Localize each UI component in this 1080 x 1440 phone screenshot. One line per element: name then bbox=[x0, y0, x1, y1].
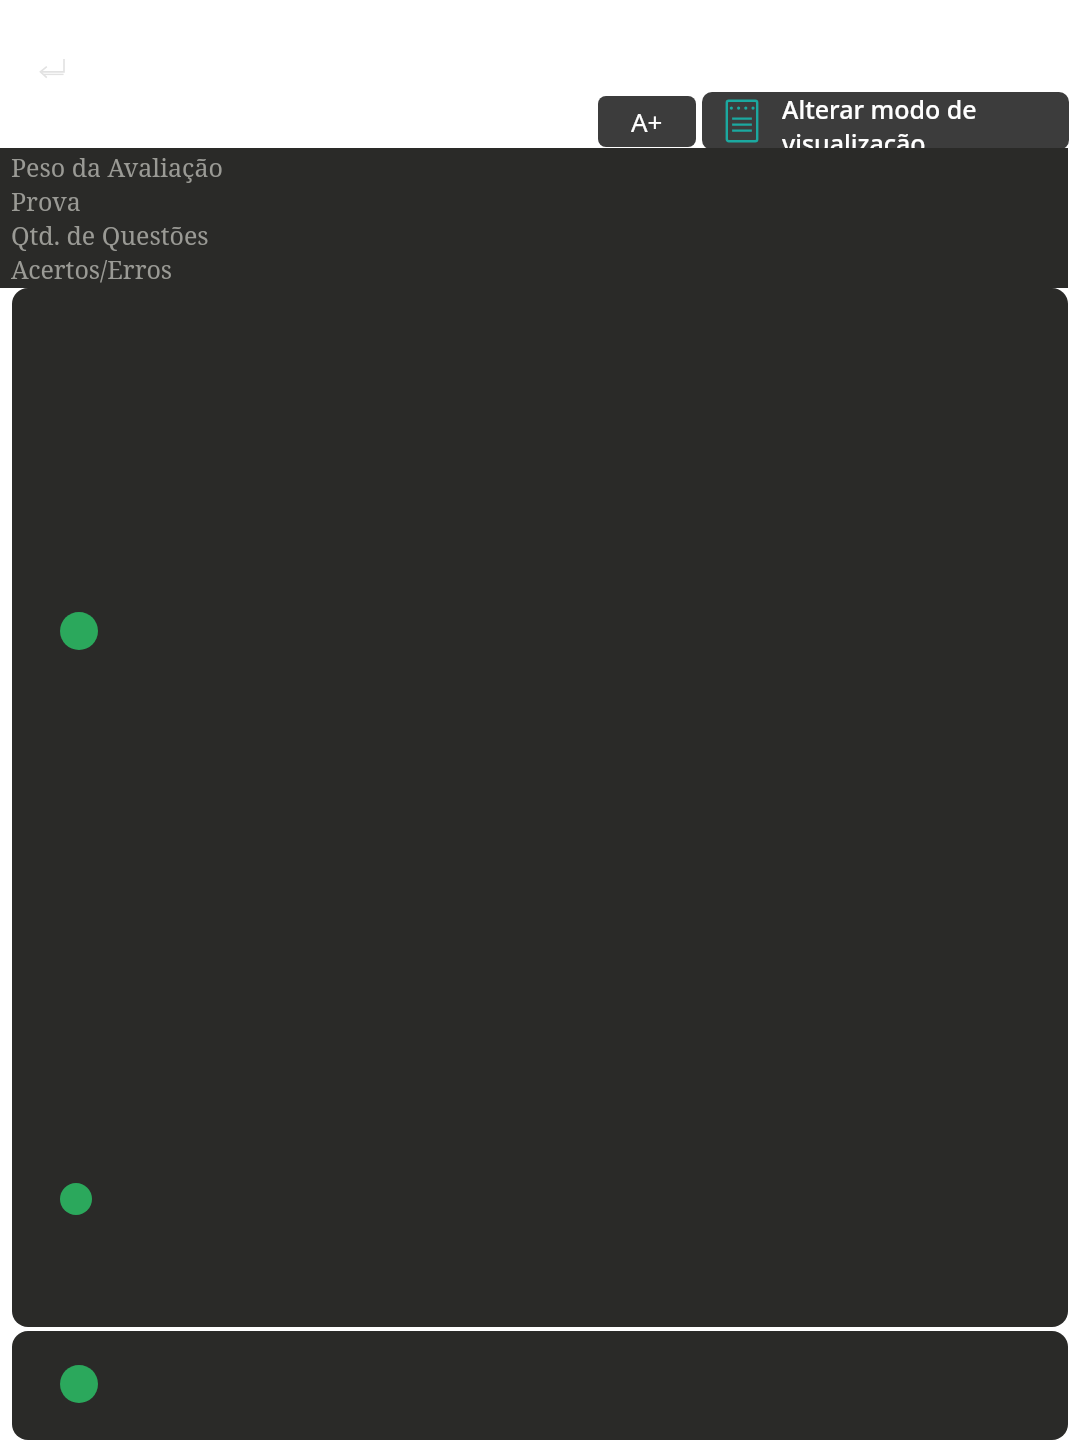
button[interactable] bbox=[12, 288, 1068, 1327]
staticText: Peso da Avaliação bbox=[11, 150, 223, 184]
staticText: A+ bbox=[631, 104, 663, 139]
button[interactable]: Alterar modo de visualização bbox=[702, 92, 1069, 150]
button[interactable]: Voltar bbox=[30, 52, 70, 84]
staticText: Qtd. de Questões bbox=[11, 218, 209, 252]
button[interactable] bbox=[12, 1331, 1068, 1440]
staticText: Acertos/Erros bbox=[11, 252, 173, 286]
staticText: Nota bbox=[11, 286, 68, 290]
button[interactable]: A+ bbox=[598, 96, 696, 147]
staticText: Prova bbox=[11, 184, 81, 218]
staticText: Alterar modo de visualização bbox=[782, 92, 1069, 150]
